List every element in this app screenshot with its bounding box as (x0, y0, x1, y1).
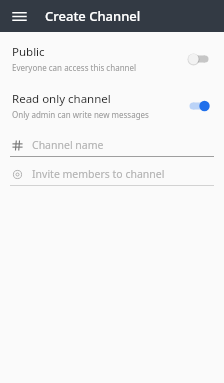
staticText: Only admin can write new messages (12, 109, 149, 120)
staticText: Public (12, 44, 45, 60)
staticText: Everyone can access this channel (12, 62, 137, 73)
button[interactable]: Public (0, 40, 224, 77)
button[interactable]: Read only channel (0, 87, 224, 124)
staticText: Create Channel (45, 7, 141, 25)
staticText: Read only channel (12, 91, 111, 107)
button[interactable]: Open navigation menu (6, 3, 32, 29)
button[interactable]: Invite members to channel (0, 165, 224, 186)
staticText: Invite members to channel (32, 167, 165, 181)
button[interactable]: Toggle on (186, 97, 212, 115)
staticText: Channel name (32, 138, 104, 152)
button[interactable]: Channel name (0, 136, 224, 157)
button[interactable]: Toggle off (186, 50, 212, 68)
